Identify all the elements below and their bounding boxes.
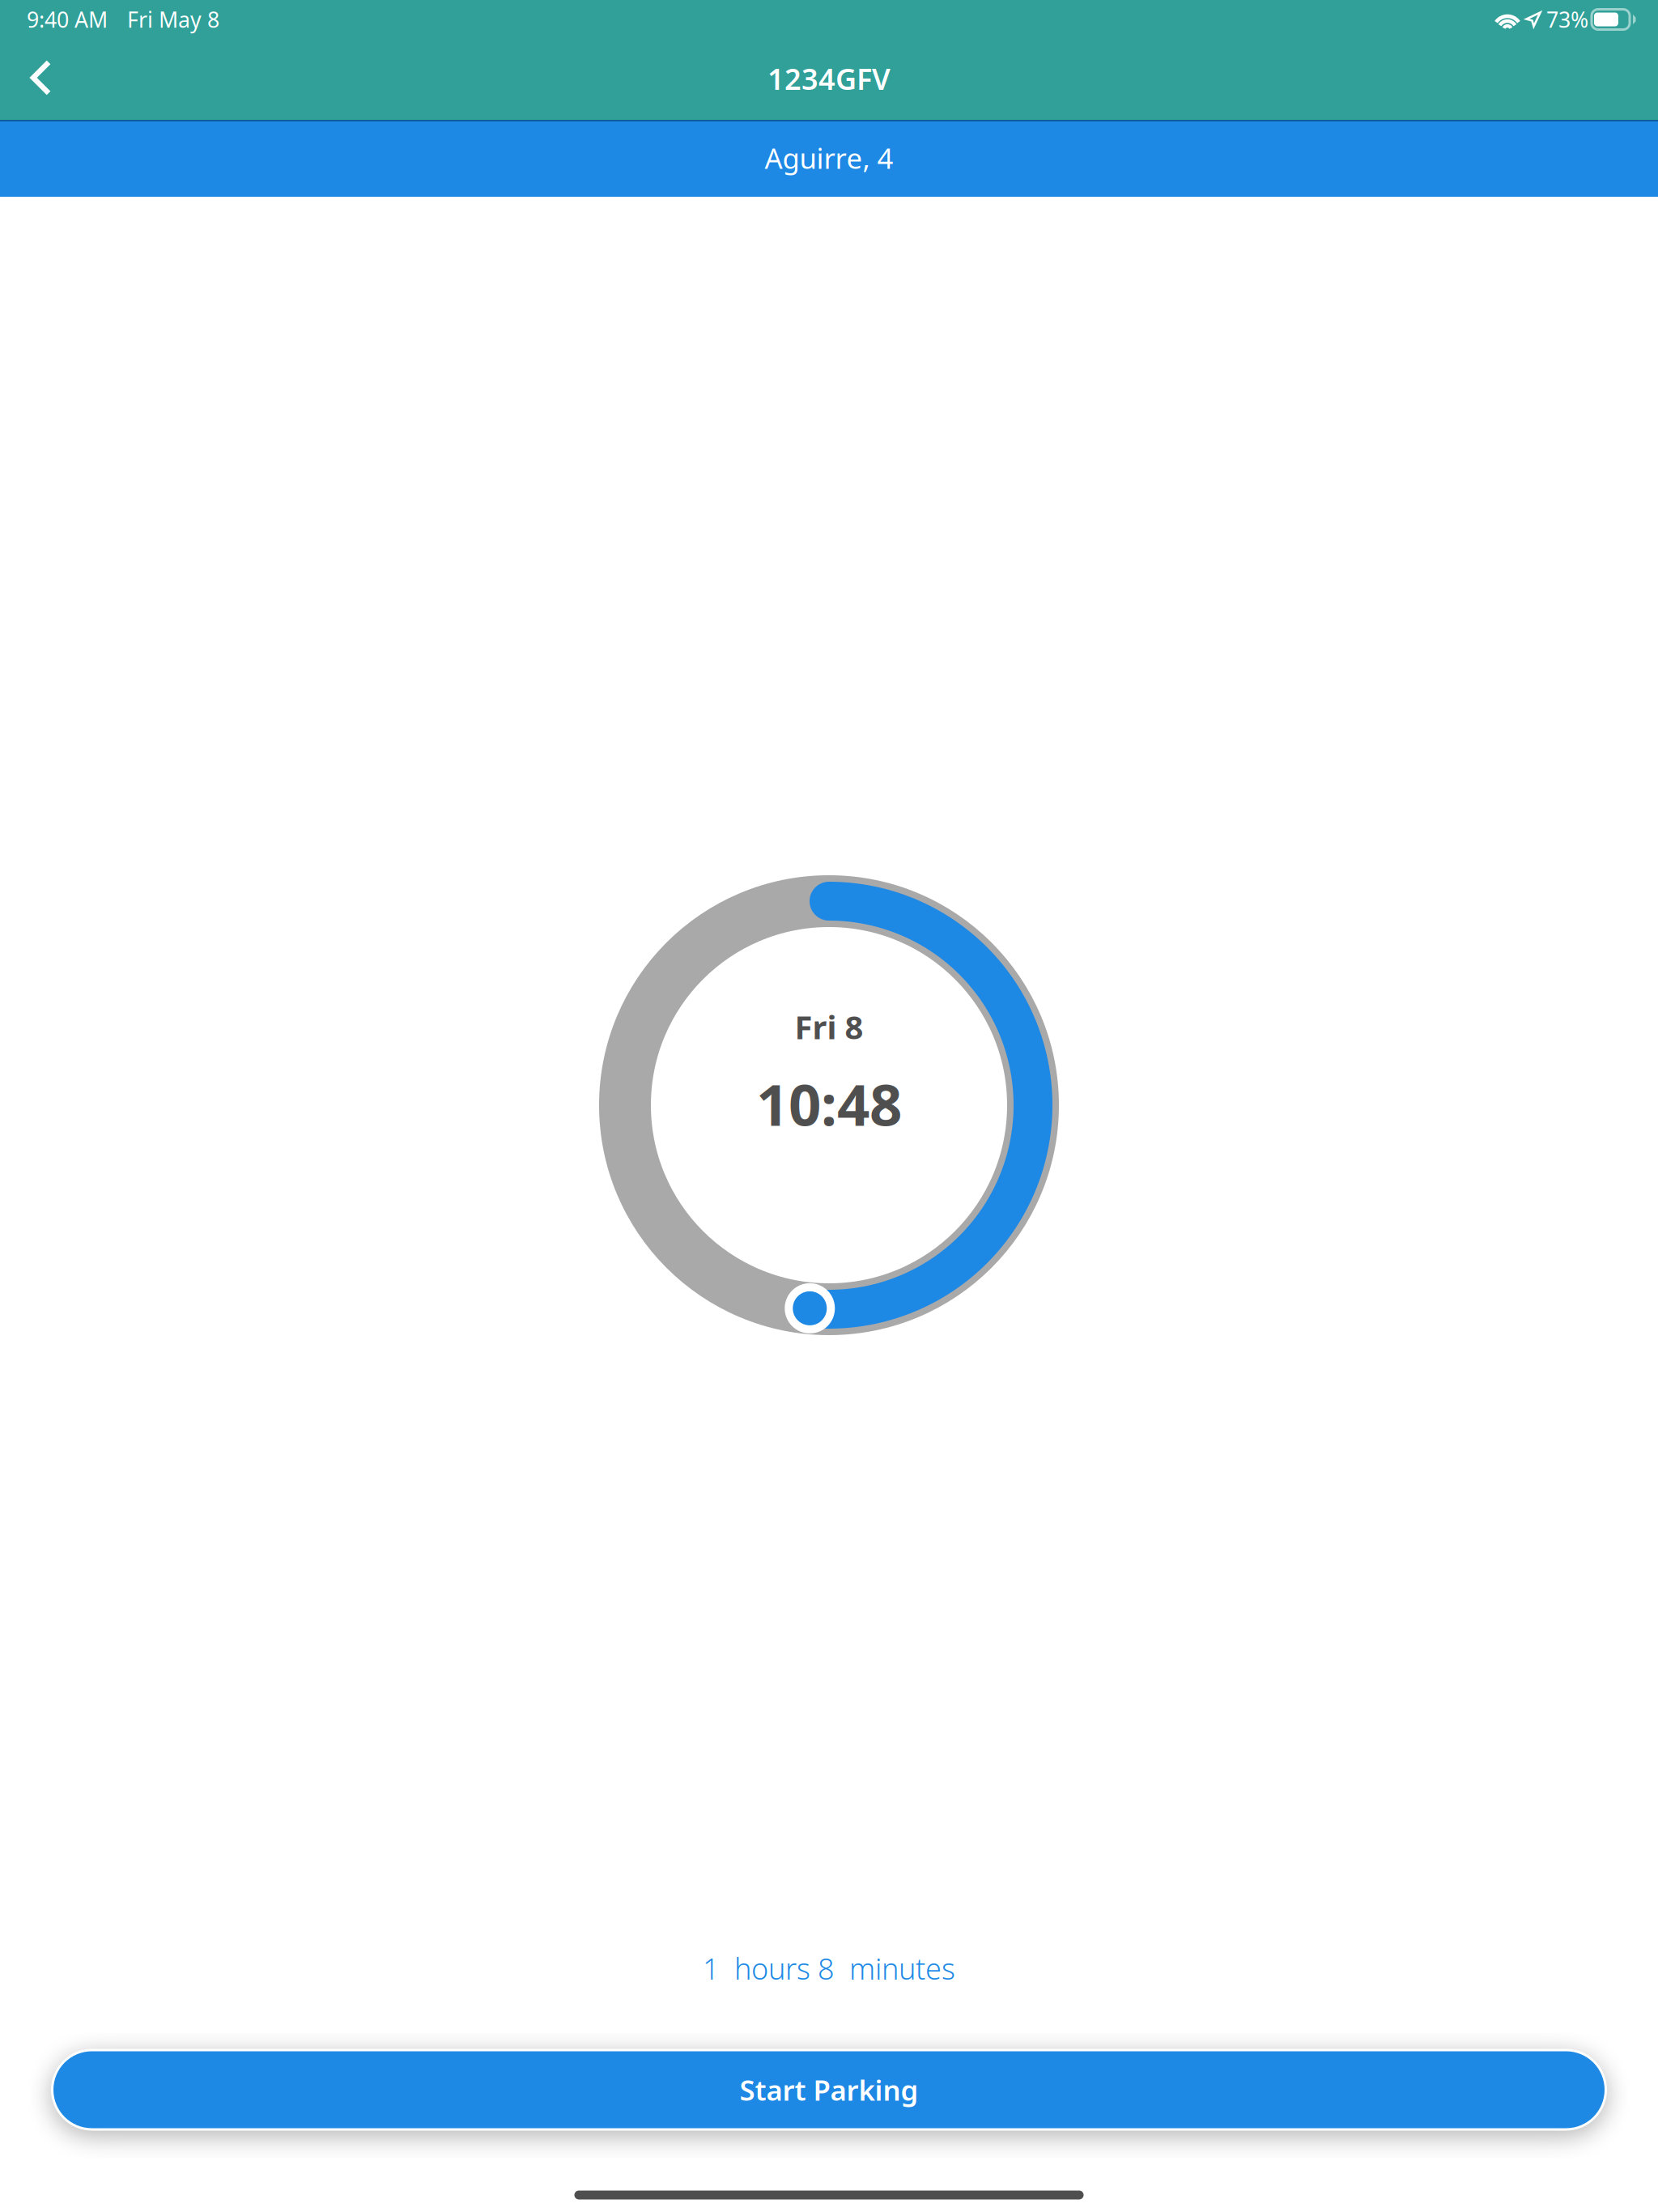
button[interactable]: Start Parking [52, 2050, 1606, 2129]
staticText: Aguirre, 4 [765, 139, 893, 177]
staticText: Fri 8 [795, 1005, 863, 1048]
staticText: Fri May 8 [127, 5, 219, 34]
staticText: Start Parking [740, 2071, 918, 2108]
staticText: 1234GFV [767, 59, 891, 98]
staticText: 10:48 [756, 1066, 902, 1142]
staticText: 9:40 AM [27, 5, 108, 34]
button[interactable]: Back [0, 40, 89, 116]
staticText: 1 hours 8 minutes [703, 1949, 955, 1988]
staticText: 73% [1546, 5, 1588, 34]
